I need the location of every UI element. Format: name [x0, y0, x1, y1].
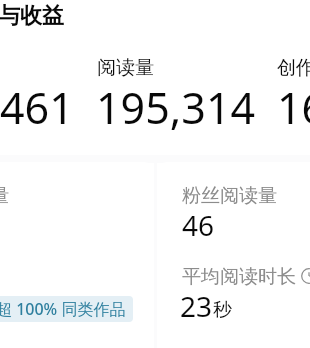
- staticText: 16: [277, 78, 310, 137]
- staticText: 粉丝阅读量: [182, 184, 277, 208]
- button[interactable]: 关于平均阅读时长 (info): [301, 268, 310, 284]
- button[interactable]: 量: [0, 162, 154, 348]
- staticText: 46: [182, 206, 215, 244]
- staticText: 平均阅读时长: [182, 265, 296, 289]
- button[interactable]: 粉丝阅读量: [157, 162, 310, 348]
- staticText: 超 100% 同类作品: [0, 298, 126, 320]
- staticText: 秒: [213, 298, 232, 322]
- button[interactable]: 超 100% 同类作品: [0, 296, 133, 322]
- staticText: 阅读量: [97, 56, 154, 80]
- staticText: 23: [180, 287, 213, 325]
- staticText: 创作: [277, 56, 310, 80]
- staticText: 195,314: [96, 78, 256, 137]
- staticText: 量: [0, 184, 9, 208]
- staticText: 461: [0, 78, 74, 137]
- staticText: 与收益: [0, 2, 64, 30]
